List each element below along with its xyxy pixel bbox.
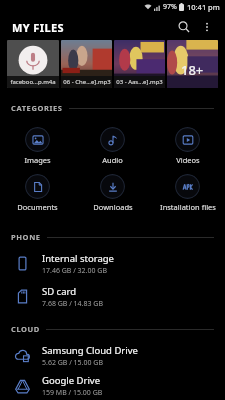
staticText: CLOUD <box>11 324 40 334</box>
staticText: Audio <box>102 155 123 165</box>
staticText: Documents <box>17 202 58 212</box>
staticText: 10:41 pm <box>187 2 220 12</box>
staticText: Downloads <box>93 202 133 212</box>
staticText: SD card <box>42 285 77 298</box>
button[interactable]: Audio <box>75 124 150 168</box>
staticText: PHONE <box>11 232 41 242</box>
staticText: 18+ <box>181 61 204 79</box>
button[interactable]: Videos <box>150 124 225 168</box>
button[interactable]: Downloads <box>75 171 150 215</box>
staticText: 159 MB / 15.00 GB <box>42 388 103 398</box>
staticText: faceboo...p.m4a <box>10 78 56 86</box>
button[interactable]: Google Drive <box>0 372 225 400</box>
staticText: 7.68 GB / 14.83 GB <box>42 299 103 309</box>
button[interactable]: Samsung Cloud Drive <box>0 339 225 372</box>
staticText: Images <box>24 155 51 165</box>
staticText: CATEGORIES <box>11 103 63 113</box>
button[interactable]: More options <box>197 17 217 37</box>
staticText: MY FILES <box>12 20 65 35</box>
staticText: Videos <box>176 155 200 165</box>
button[interactable]: Internal storage <box>0 247 225 280</box>
button[interactable]: faceboo...p.m4a <box>7 40 59 88</box>
staticText: Installation files <box>160 202 216 212</box>
staticText: 03 - Aas...e].mp3 <box>116 78 163 86</box>
button[interactable]: Documents <box>0 171 75 215</box>
staticText: Google Drive <box>42 374 101 387</box>
staticText: 5.62 GB / 15.00 GB <box>42 358 103 368</box>
staticText: Samsung Cloud Drive <box>42 344 138 357</box>
button[interactable]: Installation files <box>150 171 225 215</box>
button[interactable]: Images <box>0 124 75 168</box>
button[interactable]: 03 - Aas...e].mp3 <box>114 40 165 88</box>
button[interactable]: Search <box>173 16 195 38</box>
button[interactable]: 18+ <box>167 40 218 88</box>
button[interactable]: SD card <box>0 280 225 313</box>
button[interactable]: 06 - Che...e].mp3 <box>61 40 112 88</box>
staticText: 17.46 GB / 32.00 GB <box>42 266 107 276</box>
staticText: 97% <box>163 2 177 12</box>
staticText: 06 - Che...e].mp3 <box>63 78 111 86</box>
staticText: Internal storage <box>42 252 114 265</box>
